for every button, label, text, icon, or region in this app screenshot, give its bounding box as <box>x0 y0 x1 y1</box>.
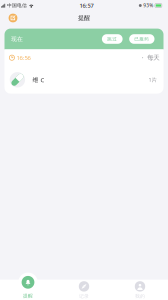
staticText: 16:57 <box>79 2 93 9</box>
staticText: 已服药 <box>134 36 149 42</box>
staticText: 93% <box>143 2 153 9</box>
staticText: 中国电信 <box>7 2 27 8</box>
button[interactable]: 新建提醒 <box>6 11 20 24</box>
button[interactable]: 已服药 <box>129 34 154 44</box>
button[interactable]: 跳过 <box>102 34 123 44</box>
staticText: 提醒 <box>23 293 33 299</box>
staticText: 跳过 <box>107 36 117 42</box>
staticText: 记录 <box>79 293 89 299</box>
staticText: 1片 <box>148 76 156 83</box>
button[interactable]: 我的 <box>112 270 168 300</box>
button[interactable]: 提醒 <box>0 270 56 300</box>
staticText: 现在 <box>11 35 23 43</box>
staticText: 每天 <box>147 54 159 62</box>
staticText: 16:56 <box>17 54 31 62</box>
button[interactable]: 记录 <box>56 270 112 300</box>
staticText: · <box>142 53 144 62</box>
staticText: 提醒 <box>78 14 90 22</box>
staticText: 我的 <box>135 293 145 299</box>
staticText: 维 C <box>32 76 44 84</box>
